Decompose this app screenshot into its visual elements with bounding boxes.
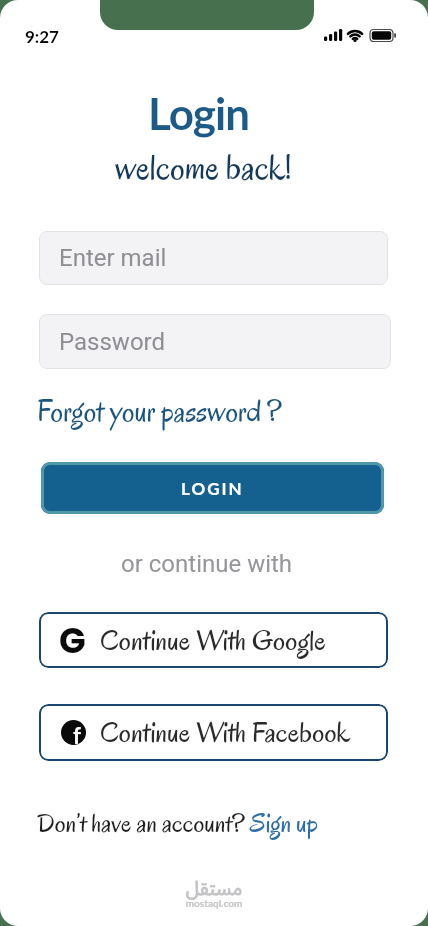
staticText: welcome back! [115, 144, 292, 190]
staticText: Password [59, 328, 166, 356]
button[interactable]: Don’t have an account? [37, 806, 319, 841]
button[interactable]: Password [39, 314, 391, 369]
button[interactable]: Enter mail [39, 231, 388, 285]
staticText: Enter mail [59, 244, 167, 272]
staticText: LOGIN [181, 478, 244, 498]
button[interactable]: G [39, 612, 388, 668]
staticText: f [73, 722, 81, 745]
staticText: or continue with [121, 550, 293, 578]
staticText: G [59, 616, 86, 665]
staticText: Continue With Facebook [100, 713, 351, 752]
staticText: Login [148, 87, 250, 140]
staticText: مستقل [0, 869, 428, 909]
button[interactable]: f [39, 704, 388, 761]
button[interactable]: Forgot your password ? [37, 391, 282, 431]
staticText: mostaql.com [0, 897, 428, 909]
button[interactable]: LOGIN [41, 462, 384, 514]
staticText: 9:27 [25, 26, 59, 46]
staticText: Don’t have an account? [37, 806, 250, 841]
staticText: Continue With Google [100, 621, 326, 660]
staticText: Sign up [250, 806, 319, 841]
